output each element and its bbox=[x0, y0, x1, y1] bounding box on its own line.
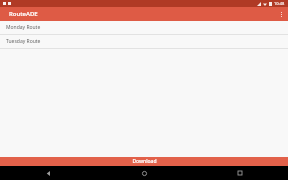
button[interactable]: More options bbox=[274, 7, 288, 21]
staticText: 10:48 bbox=[274, 1, 285, 6]
staticText: Monday Route bbox=[6, 24, 41, 31]
button[interactable]: Tuesday Route bbox=[0, 35, 288, 48]
button[interactable]: Home bbox=[96, 166, 192, 180]
button[interactable]: Back bbox=[0, 166, 96, 180]
button[interactable]: Monday Route bbox=[0, 21, 288, 34]
button[interactable]: Recent apps bbox=[192, 166, 288, 180]
staticText: Download bbox=[132, 158, 157, 165]
staticText: RouteADE bbox=[9, 10, 38, 18]
button[interactable]: Download bbox=[0, 157, 288, 166]
staticText: Tuesday Route bbox=[6, 38, 41, 45]
